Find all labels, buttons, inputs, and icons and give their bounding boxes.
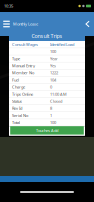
staticText: Trips Online: [12, 91, 33, 97]
staticText: 10:35: [4, 3, 13, 9]
staticText: Rev Id: [12, 106, 22, 111]
staticText: Status: [12, 98, 22, 104]
staticText: Touches Add: [36, 128, 58, 133]
staticText: Closed: [50, 98, 62, 104]
staticText: Type: [12, 56, 20, 61]
staticText: 0: [50, 84, 52, 90]
staticText: 8: [50, 106, 52, 111]
staticText: Consult Wages: [12, 42, 38, 47]
staticText: Identified Load: [50, 42, 74, 47]
staticText: Consult Trips: [31, 32, 62, 40]
staticText: 1222: [50, 70, 58, 75]
button[interactable]: Menu: [0, 12, 13, 36]
staticText: Member No: [12, 70, 34, 75]
staticText: Fuel: [12, 77, 19, 82]
staticText: Year: [50, 56, 58, 61]
staticText: Total: [12, 120, 20, 125]
staticText: Yes: [50, 63, 56, 68]
staticText: Manual Entry: [12, 63, 35, 68]
button[interactable]: Back: [81, 12, 94, 36]
staticText: 100: [50, 120, 56, 125]
staticText: 100: [50, 49, 56, 54]
staticText: Monthly Lease: [13, 21, 38, 27]
button[interactable]: Touches Add: [10, 126, 84, 135]
staticText: Charge: [12, 84, 25, 90]
staticText: 104: [50, 77, 56, 82]
staticText: Serial No: [12, 113, 28, 118]
staticText: 11:00 AM: [50, 91, 67, 97]
staticText: 1: [50, 113, 52, 118]
